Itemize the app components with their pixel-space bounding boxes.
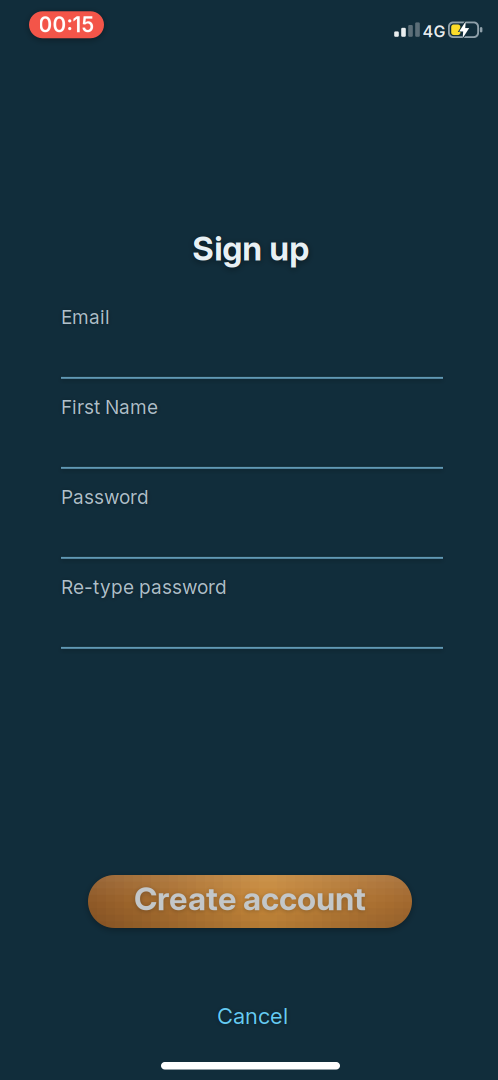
button[interactable]: Cancel <box>217 1003 288 1029</box>
button[interactable]: Create account <box>88 875 412 928</box>
button[interactable]: First Name <box>61 396 443 469</box>
staticText: Sign up <box>192 228 309 268</box>
staticText: Password <box>61 485 149 508</box>
staticText: First Name <box>61 395 158 418</box>
button[interactable]: Email <box>61 306 443 379</box>
button[interactable]: Re-type password <box>61 576 443 649</box>
button[interactable]: Password <box>61 486 443 559</box>
staticText: Cancel <box>217 1003 288 1029</box>
staticText: Create account <box>134 879 366 918</box>
staticText: Email <box>61 305 110 328</box>
button[interactable]: Return to call <box>29 11 104 38</box>
staticText: 00:15 <box>38 12 94 37</box>
staticText: Re-type password <box>61 575 227 598</box>
staticText: 4G <box>422 22 445 41</box>
